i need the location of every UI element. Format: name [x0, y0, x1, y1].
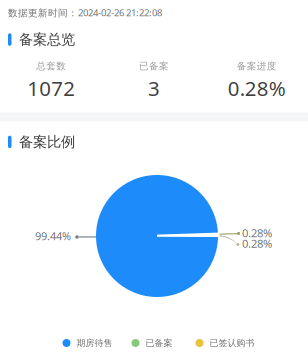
staticText: 99.44% — [35, 229, 71, 243]
staticText: 0.28% — [228, 74, 286, 102]
staticText: 1072 — [27, 74, 75, 102]
staticText: 期房待售 — [76, 337, 112, 349]
button[interactable]: 已签认购书 — [195, 337, 254, 349]
button[interactable]: 已备案 — [131, 337, 172, 349]
staticText: 0.28% — [242, 236, 272, 251]
staticText: 备案进度 — [237, 60, 277, 72]
staticText: 备案总览 — [19, 31, 75, 49]
staticText: 数据更新时间：2024-02-26 21:22:08 — [8, 6, 162, 19]
button[interactable]: 期房待售 — [62, 337, 112, 349]
staticText: 已备案 — [139, 60, 169, 72]
staticText: 总套数 — [36, 60, 66, 72]
staticText: 备案比例 — [19, 133, 75, 151]
staticText: 3 — [148, 74, 160, 102]
staticText: 已签认购书 — [209, 337, 254, 349]
staticText: 0.28% — [242, 225, 272, 241]
staticText: 已备案 — [145, 337, 172, 349]
